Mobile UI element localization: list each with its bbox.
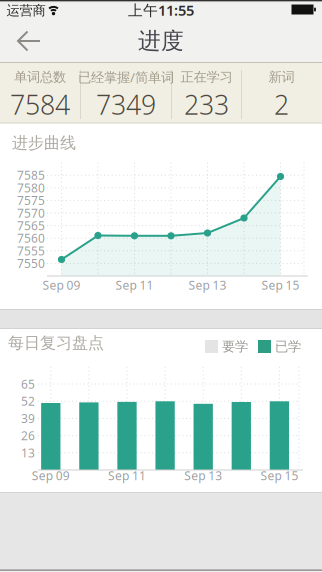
staticText: Sep 15 xyxy=(261,277,299,293)
staticText: 每日复习盘点 xyxy=(8,333,104,353)
staticText: 7575 xyxy=(17,192,45,208)
staticText: 7570 xyxy=(17,205,45,221)
staticText: Sep 09 xyxy=(32,467,70,483)
staticText: 运营商 xyxy=(6,2,45,19)
staticText: 单词总数 xyxy=(14,69,66,85)
staticText: 7584 xyxy=(10,87,70,122)
staticText: 26 xyxy=(21,428,35,443)
staticText: Sep 09 xyxy=(42,277,80,293)
button[interactable] xyxy=(4,20,48,62)
staticText: 7565 xyxy=(17,218,45,233)
staticText: 进步曲线 xyxy=(12,133,76,153)
staticText: 2 xyxy=(274,87,289,122)
staticText: 要学 xyxy=(222,338,248,355)
staticText: 233 xyxy=(184,87,229,122)
staticText: 已学 xyxy=(275,338,301,355)
staticText: Sep 15 xyxy=(260,467,298,483)
staticText: 13 xyxy=(21,445,35,461)
staticText: 正在学习 xyxy=(180,69,232,85)
staticText: 52 xyxy=(21,393,35,409)
staticText: 7349 xyxy=(96,87,156,122)
staticText: Sep 11 xyxy=(115,277,153,293)
staticText: 新词 xyxy=(268,69,294,85)
staticText: 65 xyxy=(21,376,35,392)
staticText: 39 xyxy=(21,410,35,426)
staticText: Sep 13 xyxy=(188,277,226,293)
staticText: 7555 xyxy=(17,243,45,259)
staticText: Sep 13 xyxy=(184,467,222,483)
staticText: 7585 xyxy=(17,167,45,183)
staticText: Sep 11 xyxy=(108,467,146,483)
staticText: 进度 xyxy=(138,27,184,55)
staticText: 上午11:55 xyxy=(128,0,194,20)
staticText: 7550 xyxy=(17,255,45,271)
staticText: 7580 xyxy=(17,180,45,196)
staticText: 7560 xyxy=(17,230,45,246)
staticText: 已经掌握/简单词 xyxy=(78,68,174,86)
